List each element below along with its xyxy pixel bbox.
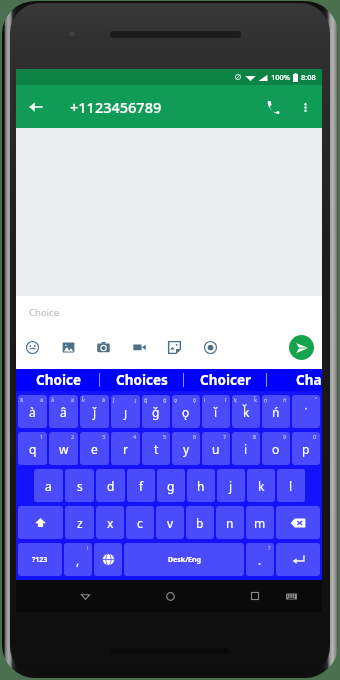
staticText: v: [167, 515, 174, 531]
staticText: ņ: [264, 396, 268, 403]
button[interactable]: l: [277, 469, 305, 502]
button[interactable]: ǩ: [232, 395, 260, 428]
button[interactable]: h: [187, 469, 215, 502]
staticText: b: [196, 515, 204, 531]
staticText: x: [107, 515, 114, 531]
staticText: o: [272, 441, 280, 457]
button[interactable]: Keyboard: [276, 581, 306, 611]
button[interactable]: s: [65, 469, 94, 502]
button[interactable]: Emoji: [18, 333, 46, 361]
staticText: 7: [223, 433, 227, 440]
button[interactable]: ǰ: [80, 395, 109, 428]
staticText: Choicer: [200, 371, 251, 389]
button[interactable]: g: [157, 469, 185, 502]
button[interactable]: Choices: [100, 369, 184, 391]
staticText: ĝ: [144, 396, 148, 403]
button[interactable]: [276, 506, 320, 539]
button[interactable]: Cha: [267, 369, 330, 391]
button[interactable]: q: [18, 432, 47, 465]
staticText: q: [29, 441, 37, 457]
button[interactable]: i: [232, 432, 260, 465]
button[interactable]: â: [49, 395, 78, 428]
button[interactable]: ˙: [292, 395, 320, 428]
button[interactable]: Choice: [16, 369, 100, 391]
button[interactable]: y: [172, 432, 200, 465]
staticText: e: [91, 441, 98, 457]
button[interactable]: d: [96, 469, 125, 502]
button[interactable]: p: [292, 432, 320, 465]
button[interactable]: ȷ: [111, 395, 140, 428]
button[interactable]: a: [34, 469, 63, 502]
button[interactable]: ?123: [18, 543, 62, 576]
button[interactable]: m: [246, 506, 274, 539]
button[interactable]: ń: [262, 395, 290, 428]
button[interactable]: r: [111, 432, 140, 465]
staticText: í: [225, 396, 227, 403]
button[interactable]: Home: [155, 581, 185, 611]
button[interactable]: t: [142, 432, 170, 465]
button[interactable]: z: [65, 506, 94, 539]
button[interactable]: Choicer: [183, 369, 267, 391]
button[interactable]: j: [217, 469, 245, 502]
staticText: ?: [268, 544, 271, 551]
button[interactable]: w: [49, 432, 78, 465]
button[interactable]: f: [127, 469, 155, 502]
staticText: ǩ: [254, 396, 257, 403]
staticText: d: [107, 478, 115, 494]
staticText: i: [244, 441, 248, 457]
button[interactable]: Send: [289, 335, 314, 360]
staticText: +1123456789: [70, 97, 162, 117]
button[interactable]: [94, 543, 122, 576]
button[interactable]: Recents: [240, 581, 270, 611]
button[interactable]: v: [156, 506, 184, 539]
button[interactable]: .: [246, 543, 274, 576]
staticText: w: [59, 441, 69, 457]
staticText: 9: [283, 433, 287, 440]
button[interactable]: ǧ: [142, 395, 170, 428]
staticText: ǎ: [102, 396, 106, 403]
staticText: ˚: [315, 396, 317, 403]
staticText: m: [254, 515, 266, 531]
staticText: a: [45, 478, 52, 494]
button[interactable]: [18, 506, 63, 539]
staticText: 1: [40, 433, 44, 440]
staticText: Choice: [29, 306, 59, 319]
staticText: ǧ: [152, 404, 160, 420]
button[interactable]: c: [126, 506, 154, 539]
button[interactable]: Back: [70, 581, 100, 611]
button[interactable]: More options: [291, 93, 319, 121]
staticText: Choices: [116, 371, 168, 389]
button[interactable]: Back: [16, 87, 56, 127]
button[interactable]: ǐ: [202, 395, 230, 428]
staticText: ǭ: [193, 396, 197, 403]
staticText: ń: [272, 404, 280, 420]
staticText: f: [139, 478, 144, 494]
button[interactable]: à: [18, 395, 47, 428]
staticText: ǰ: [93, 404, 97, 420]
staticText: á: [40, 396, 44, 403]
button[interactable]: ǫ: [172, 395, 200, 428]
staticText: 3: [102, 433, 106, 440]
staticText: ˙: [305, 404, 308, 420]
button[interactable]: x: [96, 506, 124, 539]
staticText: ȷ: [135, 396, 137, 403]
button[interactable]: Sticker: [160, 333, 188, 361]
staticText: g: [167, 478, 175, 494]
button[interactable]: Gallery: [54, 333, 82, 361]
button[interactable]: Call: [255, 89, 291, 125]
button[interactable]: n: [216, 506, 244, 539]
button[interactable]: [276, 543, 320, 576]
button[interactable]: o: [262, 432, 290, 465]
button[interactable]: k: [247, 469, 275, 502]
button[interactable]: Desk/Eng: [124, 543, 244, 576]
staticText: ǵ: [163, 396, 167, 403]
button[interactable]: ,: [64, 543, 92, 576]
button[interactable]: b: [186, 506, 214, 539]
button[interactable]: e: [80, 432, 109, 465]
staticText: ǩ: [82, 396, 85, 403]
staticText: ?123: [32, 555, 48, 565]
button[interactable]: Camera: [89, 333, 117, 361]
button[interactable]: Video: [125, 333, 153, 361]
button[interactable]: Record: [196, 333, 224, 361]
button[interactable]: u: [202, 432, 230, 465]
